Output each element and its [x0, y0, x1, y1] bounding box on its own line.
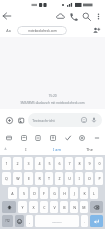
button[interactable]: L: [90, 187, 98, 199]
button[interactable]: M: [80, 201, 88, 213]
button[interactable]: Contact: [91, 25, 102, 36]
button[interactable]: Emoji: [80, 116, 88, 124]
button[interactable]: Call: [67, 10, 80, 23]
button[interactable]: 5: [45, 157, 53, 170]
button[interactable]: 0: [95, 157, 103, 170]
staticText: 15:20: [48, 94, 57, 98]
staticText: 1: [5, 161, 8, 166]
button[interactable]: 1: [2, 157, 11, 170]
button[interactable]: Space: [35, 215, 79, 227]
staticText: E: [28, 176, 30, 181]
button[interactable]: O: [85, 172, 93, 185]
button[interactable]: Y: [18, 201, 27, 213]
button[interactable]: Backspace: [90, 201, 103, 213]
button[interactable]: 8: [75, 157, 83, 170]
staticText: ⚓: [4, 147, 7, 151]
button[interactable]: S: [19, 187, 28, 199]
button[interactable]: 2: [13, 157, 22, 170]
button[interactable]: I am: [41, 143, 73, 155]
button[interactable]: GIF: [32, 132, 43, 143]
staticText: 3: [27, 161, 30, 166]
button[interactable]: E: [24, 172, 33, 185]
button[interactable]: C: [40, 201, 48, 213]
button[interactable]: Clipboard: [3, 132, 14, 143]
button[interactable]: Voice message: [90, 116, 98, 124]
button[interactable]: I: [10, 143, 41, 155]
button[interactable]: U: [65, 172, 73, 185]
button[interactable]: 7: [65, 157, 73, 170]
button[interactable]: Back: [0, 9, 14, 23]
staticText: 6: [58, 161, 61, 166]
button[interactable]: Theme: [76, 132, 87, 143]
staticText: 9: [88, 161, 91, 166]
staticText: I am: [53, 147, 61, 152]
staticText: J: [74, 191, 75, 196]
button[interactable]: The: [73, 143, 105, 155]
button[interactable]: 6: [55, 157, 63, 170]
button[interactable]: Settings: [62, 132, 73, 143]
staticText: M: [82, 205, 86, 210]
staticText: L: [93, 191, 95, 196]
staticText: SMS/MMS: Ausbusch mit notebookcheck.com: [20, 101, 85, 105]
staticText: F: [43, 191, 45, 196]
button[interactable]: A: [8, 187, 17, 199]
staticText: K: [83, 191, 86, 196]
button[interactable]: More options: [93, 11, 104, 22]
button[interactable]: P: [95, 172, 103, 185]
button[interactable]: ,: [26, 215, 33, 227]
button[interactable]: K: [80, 187, 88, 199]
button[interactable]: 9: [85, 157, 93, 170]
button[interactable]: Q: [2, 172, 11, 185]
button[interactable]: N: [70, 201, 78, 213]
staticText: Q: [5, 176, 8, 181]
staticText: 0: [98, 161, 101, 166]
button[interactable]: Gallery: [15, 114, 27, 126]
button[interactable]: H: [60, 187, 68, 199]
button[interactable]: 4: [35, 157, 43, 170]
button[interactable]: Voice input: [0, 143, 10, 155]
staticText: Textnachricht: [32, 118, 55, 123]
button[interactable]: Translate: [47, 132, 58, 143]
button[interactable]: Shift: [2, 201, 16, 213]
staticText: A: [11, 191, 14, 196]
staticText: The: [86, 147, 93, 152]
button[interactable]: Add: [3, 114, 15, 126]
button[interactable]: More: [91, 132, 102, 143]
button[interactable]: X: [29, 201, 38, 213]
staticText: 4: [38, 161, 41, 166]
button[interactable]: ?12: [2, 215, 13, 227]
button[interactable]: W: [13, 172, 22, 185]
button[interactable]: V: [50, 201, 58, 213]
button[interactable]: Emoji: [15, 215, 24, 227]
button[interactable]: T: [45, 172, 53, 185]
button[interactable]: Text size: [3, 25, 13, 35]
staticText: O: [88, 176, 91, 181]
button[interactable]: .: [81, 215, 88, 227]
staticText: R: [38, 176, 41, 181]
button[interactable]: notebookcheck.com: [17, 26, 67, 35]
button[interactable]: Z: [55, 172, 63, 185]
staticText: ,: [29, 219, 30, 224]
staticText: S: [23, 191, 25, 196]
staticText: 8: [78, 161, 81, 166]
button[interactable]: Search: [80, 10, 93, 23]
button[interactable]: G: [50, 187, 58, 199]
button[interactable]: J: [70, 187, 78, 199]
staticText: Aa: [6, 28, 11, 33]
button[interactable]: Textnachricht: [28, 113, 102, 127]
button[interactable]: F: [40, 187, 48, 199]
button[interactable]: 3: [24, 157, 33, 170]
button[interactable]: Cloud: [54, 10, 67, 23]
button[interactable]: D: [30, 187, 38, 199]
staticText: notebookcheck.com: [28, 29, 57, 33]
staticText: ?12: [5, 219, 10, 223]
button[interactable]: R: [35, 172, 43, 185]
staticText: H: [63, 191, 66, 196]
staticText: V: [53, 205, 56, 210]
button[interactable]: Enter: [90, 215, 103, 227]
button[interactable]: Stickers: [18, 132, 29, 143]
button[interactable]: B: [60, 201, 68, 213]
button[interactable]: I: [75, 172, 83, 185]
staticText: W: [16, 176, 20, 181]
staticText: Z: [58, 176, 61, 181]
